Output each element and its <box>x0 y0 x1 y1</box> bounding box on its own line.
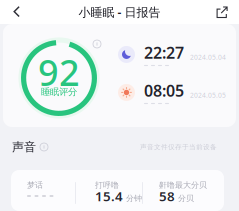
button[interactable]: Share <box>210 0 234 24</box>
staticText: 鼾噜最大分贝 <box>159 180 207 190</box>
staticText: 分贝 <box>178 193 194 203</box>
staticText: 2024.05.04 <box>190 53 226 62</box>
button[interactable]: Sound info <box>36 143 48 151</box>
staticText: 小睡眠 - 日报告 <box>78 4 160 20</box>
staticText: 声音文件仅存于当前设备 <box>140 143 217 151</box>
staticText: 15.4 <box>95 187 123 205</box>
staticText: 92 <box>38 48 80 96</box>
staticText: 睡眠评分 <box>41 86 77 98</box>
button[interactable]: Score info <box>90 37 104 51</box>
staticText: 打呼噜 <box>95 180 119 190</box>
staticText: 22:27 <box>144 42 184 63</box>
staticText: 梦话 <box>27 180 43 190</box>
button[interactable]: Back <box>5 0 29 24</box>
staticText: 58 <box>159 187 175 205</box>
staticText: 声音 <box>12 140 36 154</box>
staticText: 2024.05.05 <box>190 91 226 100</box>
staticText: 分钟 <box>126 193 142 203</box>
staticText: 08:05 <box>144 80 184 101</box>
